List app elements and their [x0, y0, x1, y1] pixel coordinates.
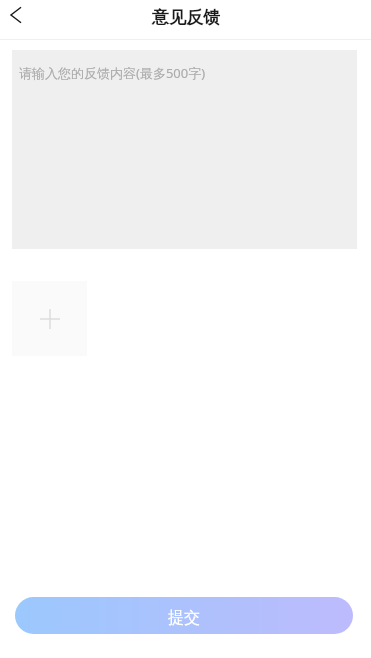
button[interactable]: Back — [0, 0, 32, 31]
button[interactable]: 提交 — [15, 597, 353, 634]
button[interactable]: 请输入您的反馈内容(最多500字) — [12, 50, 357, 249]
staticText: 意见反馈 — [152, 7, 220, 28]
staticText: 请输入您的反馈内容(最多500字) — [19, 64, 206, 82]
staticText: 提交 — [168, 608, 200, 628]
